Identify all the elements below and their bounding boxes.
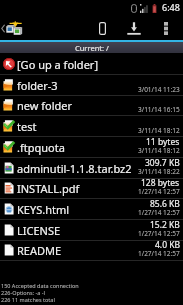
staticText: INSTALL.pdf: [17, 181, 80, 196]
staticText: Current: /: [75, 43, 109, 53]
staticText: 85.6 KB: [150, 198, 180, 210]
staticText: [Go up a folder]: [17, 57, 99, 72]
button[interactable]: KEYS.html: [0, 199, 183, 220]
staticText: 3/11/14 16:15: [138, 105, 180, 114]
staticText: 226 11 matches total: [1, 296, 55, 303]
staticText: 1/27/14 12:57: [138, 208, 180, 217]
staticText: 309.7 KB: [145, 157, 180, 169]
button[interactable]: Navigate up: [0, 21, 24, 36]
staticText: 3/11/14 18:22: [138, 167, 180, 176]
button[interactable]: folder-3: [0, 75, 183, 96]
staticText: 1/27/14 12:57: [138, 249, 180, 258]
button[interactable]: INSTALL.pdf: [0, 178, 183, 199]
button[interactable]: README: [0, 240, 183, 261]
staticText: KEYS.html: [17, 202, 70, 217]
button[interactable]: test: [0, 116, 183, 137]
staticText: 6:48: [162, 1, 180, 13]
staticText: README: [17, 243, 62, 258]
staticText: 3/11/14 18:12: [138, 146, 180, 155]
staticText: adminutil-1.1.8.tar.bz2: [17, 161, 132, 176]
staticText: 150 Accepted data connection: [1, 282, 79, 289]
staticText: 1/27/14 12:57: [138, 187, 180, 196]
staticText: 3/11/14 18:12: [138, 126, 180, 135]
staticText: 128 bytes: [141, 177, 180, 189]
staticText: LICENSE: [17, 223, 61, 238]
button[interactable]: adminutil-1.1.8.tar.bz2: [0, 158, 183, 179]
button[interactable]: new folder: [0, 95, 183, 116]
button[interactable]: .ftpquota: [0, 137, 183, 158]
staticText: 3/01/14 11:23: [138, 85, 180, 94]
staticText: .ftpquota: [17, 140, 65, 155]
button[interactable]: More options: [150, 16, 182, 40]
button[interactable]: Connect device: [86, 16, 118, 40]
button[interactable]: LICENSE: [0, 220, 183, 241]
staticText: new folder: [17, 98, 73, 113]
button[interactable]: Download: [118, 16, 150, 40]
staticText: 11 bytes: [146, 136, 180, 148]
staticText: 4.0 KB: [155, 239, 180, 251]
staticText: 1/27/14 12:57: [138, 229, 180, 238]
staticText: 226-Options: -a -l: [1, 289, 46, 296]
staticText: 15.2 KB: [150, 219, 180, 231]
staticText: test: [17, 119, 37, 134]
button[interactable]: [Go up a folder]: [0, 54, 183, 75]
staticText: folder-3: [17, 78, 58, 93]
